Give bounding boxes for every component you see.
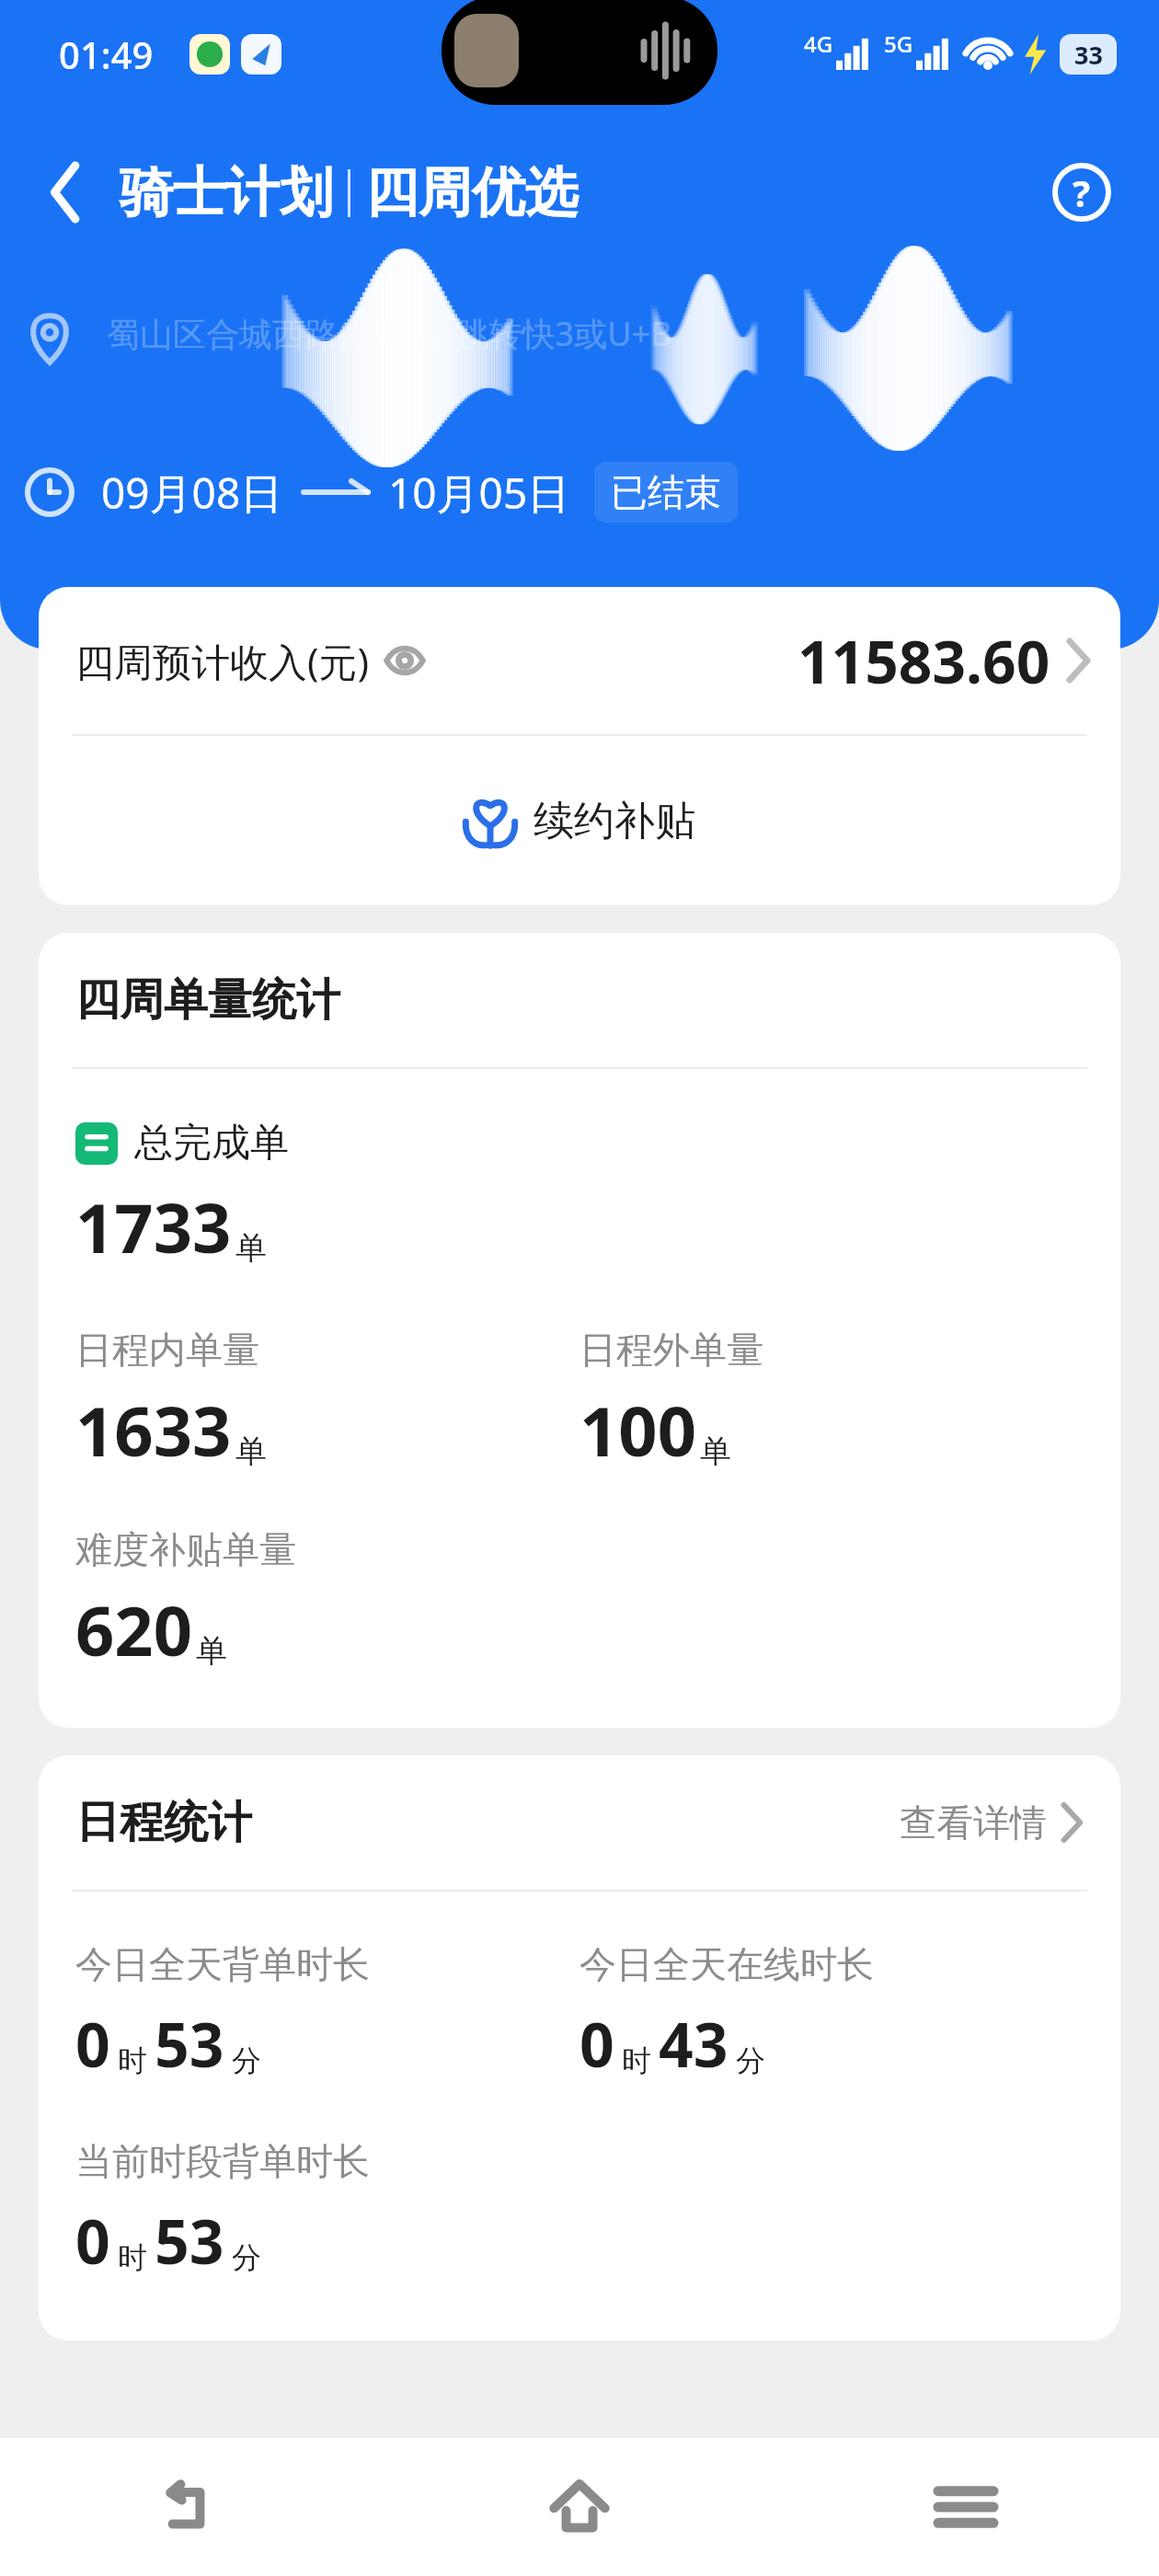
staticText: 续约补贴 xyxy=(534,796,695,846)
staticText: 已结束 xyxy=(611,469,721,515)
button[interactable]: 已结束 xyxy=(596,462,736,523)
staticText: 单 xyxy=(235,1228,267,1268)
staticText: 分 xyxy=(736,2042,765,2079)
staticText: 09月08日 xyxy=(101,464,283,522)
button[interactable]: 四周预计收入(元) xyxy=(39,587,1120,734)
staticText: ? xyxy=(1073,167,1091,217)
staticText: 53 xyxy=(155,2199,224,2282)
button[interactable]: Home xyxy=(386,2438,773,2576)
button[interactable]: Recent apps xyxy=(773,2438,1159,2576)
staticText: 今日全天在线时长 xyxy=(579,1941,874,1987)
button[interactable]: 续约补贴 xyxy=(39,736,1120,905)
staticText: 10月05日 xyxy=(388,464,570,522)
staticText: 0 xyxy=(75,2002,110,2085)
staticText: 当前时段背单时长 xyxy=(75,2138,370,2184)
staticText: 53 xyxy=(155,2002,224,2085)
staticText: 单 xyxy=(196,1631,227,1671)
button[interactable]: 查看详情 xyxy=(894,1794,1087,1851)
staticText: 100 xyxy=(579,1384,696,1477)
staticText: 日程内单量 xyxy=(75,1327,259,1373)
staticText: 时 xyxy=(118,2042,147,2079)
staticText: 单 xyxy=(700,1432,731,1471)
staticText: 时 xyxy=(622,2042,651,2079)
staticText: 分 xyxy=(232,2042,261,2079)
staticText: 分 xyxy=(232,2239,261,2276)
staticText: 查看详情 xyxy=(900,1800,1047,1846)
staticText: 日程外单量 xyxy=(579,1327,763,1373)
staticText: 单 xyxy=(235,1432,267,1471)
staticText: 11583.60 xyxy=(798,621,1050,701)
staticText: 4G xyxy=(804,29,833,59)
staticText: 难度补贴单量 xyxy=(75,1526,296,1572)
staticText: 0 xyxy=(75,2199,110,2282)
staticText: 四周预计收入(元) xyxy=(75,635,370,687)
staticText: 蜀山区合城西路(C组)… 跳转快3或U+B xyxy=(107,311,672,356)
staticText: 33 xyxy=(1074,38,1103,72)
staticText: 620 xyxy=(75,1583,192,1676)
staticText: 43 xyxy=(659,2002,729,2085)
staticText: 1733 xyxy=(75,1180,232,1273)
staticText: 5G xyxy=(884,29,913,59)
button[interactable]: Back xyxy=(0,2438,386,2576)
button[interactable]: Help xyxy=(1041,152,1122,233)
staticText: 骑士计划 xyxy=(120,159,333,226)
staticText: 今日全天背单时长 xyxy=(75,1941,370,1987)
staticText: 日程统计 xyxy=(75,1795,252,1850)
staticText: 01:49 xyxy=(59,29,154,79)
button[interactable]: Back xyxy=(22,149,109,236)
staticText: 四周单量统计 xyxy=(75,972,340,1028)
staticText: 四周优选 xyxy=(365,159,579,226)
staticText: 总完成单 xyxy=(134,1119,289,1167)
staticText: 时 xyxy=(118,2239,147,2276)
staticText: 1633 xyxy=(75,1384,232,1477)
staticText: 0 xyxy=(579,2002,614,2085)
